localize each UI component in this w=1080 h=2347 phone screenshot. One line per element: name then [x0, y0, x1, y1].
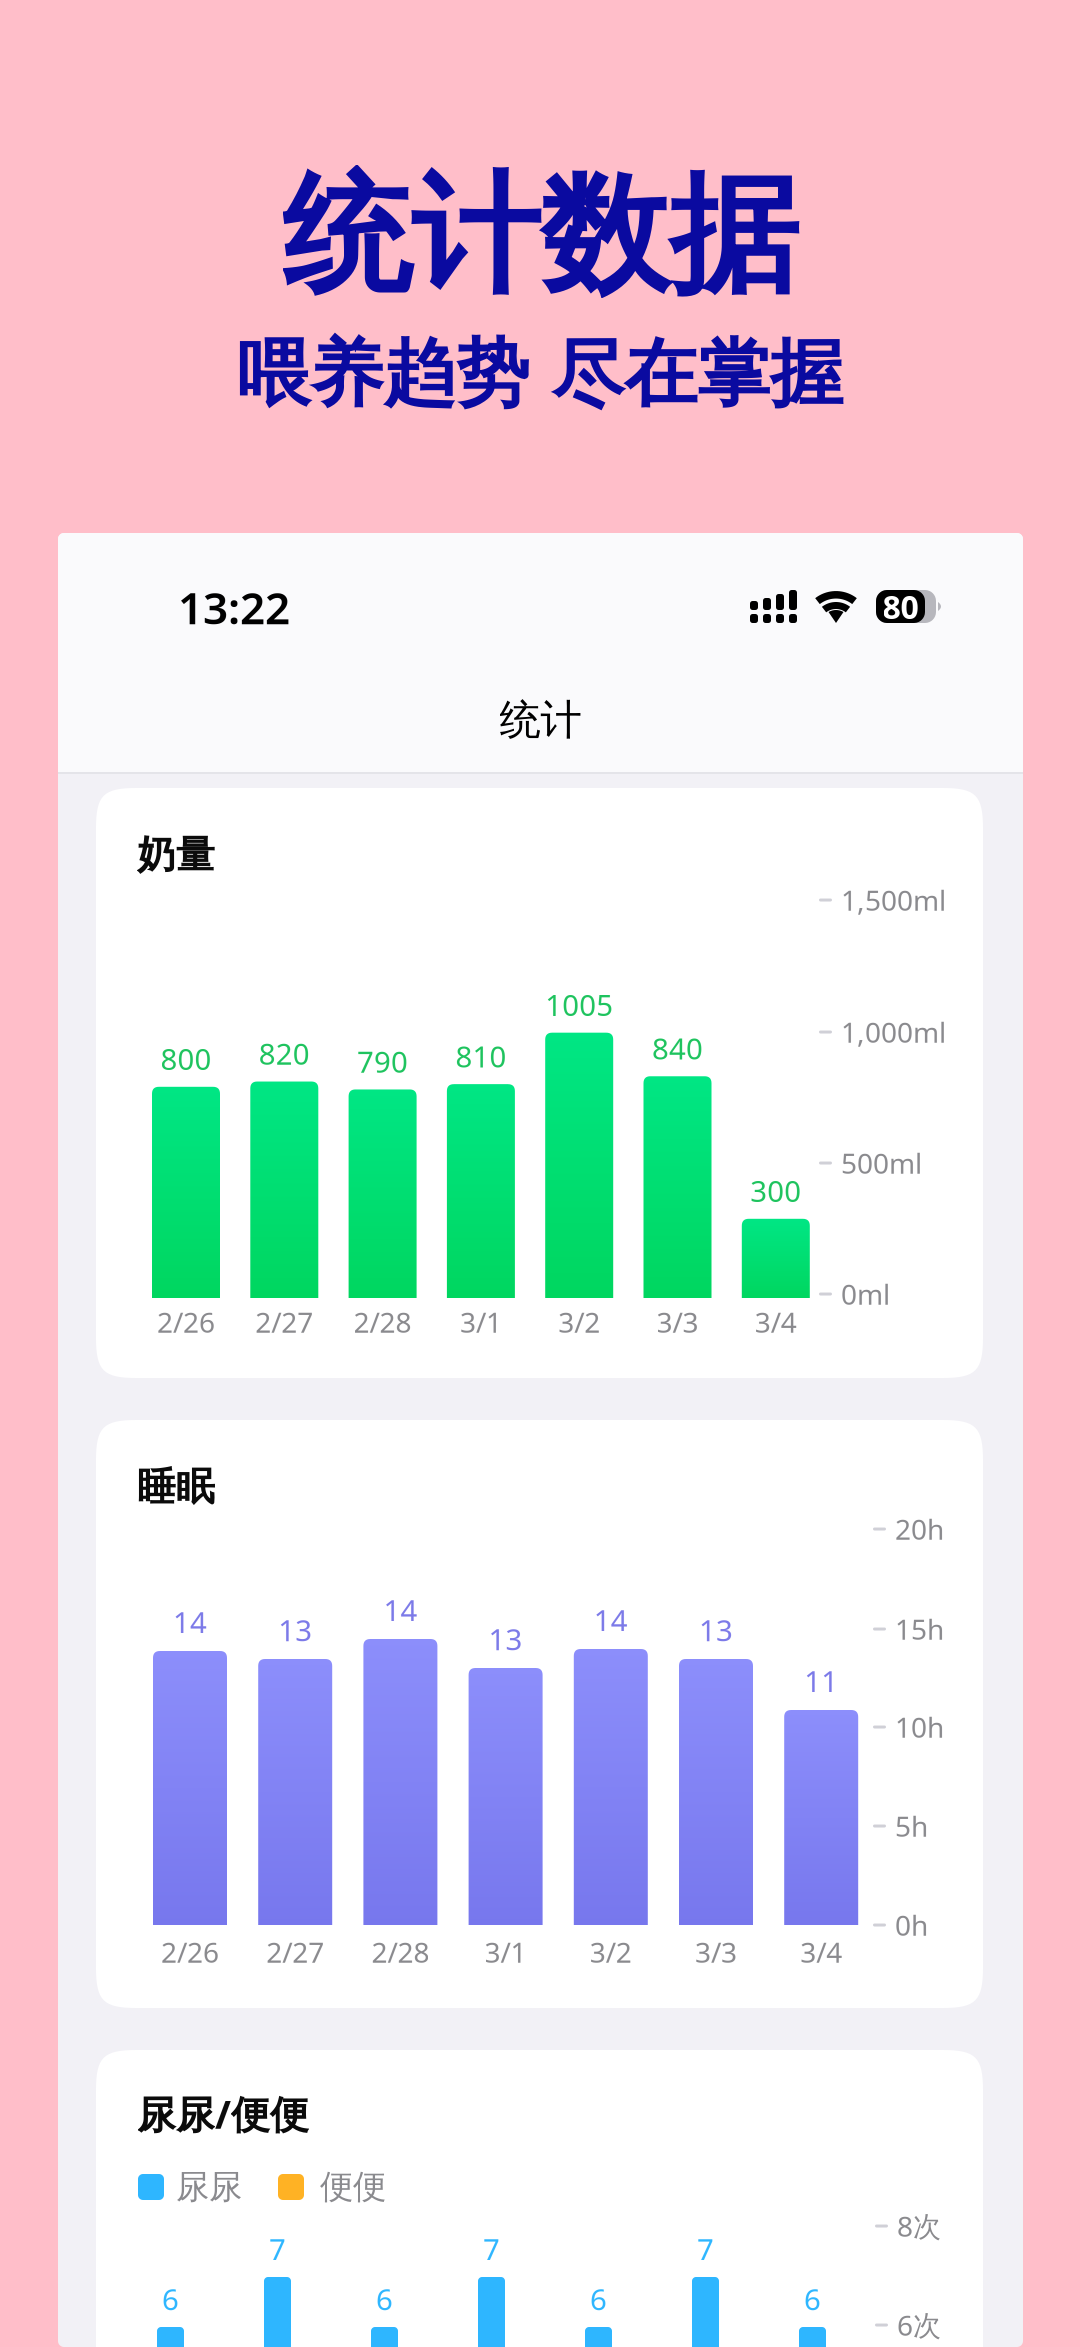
- staticText: 6: [804, 2279, 821, 2318]
- staticText: 14: [383, 1590, 417, 1629]
- staticText: 820: [259, 1034, 310, 1073]
- staticText: 14: [173, 1602, 207, 1641]
- staticText: 3/3: [656, 1303, 698, 1340]
- staticText: 2/26: [157, 1303, 215, 1340]
- staticText: 3/1: [460, 1303, 502, 1340]
- staticText: 2/28: [371, 1933, 429, 1970]
- staticText: 14: [594, 1600, 628, 1639]
- staticText: 2/27: [266, 1933, 324, 1970]
- staticText: 7: [269, 2229, 286, 2268]
- staticText: 0h: [895, 1906, 928, 1943]
- staticText: 7: [483, 2229, 500, 2268]
- staticText: 6: [162, 2279, 179, 2318]
- staticText: 尿尿/便便: [137, 2088, 309, 2139]
- staticText: 13: [278, 1610, 312, 1649]
- staticText: 6: [376, 2279, 393, 2318]
- staticText: 1005: [545, 985, 613, 1024]
- staticText: 统计数据: [282, 157, 798, 315]
- staticText: 2/27: [255, 1303, 313, 1340]
- staticText: 奶量: [137, 831, 215, 879]
- staticText: 统计: [499, 695, 581, 745]
- staticText: 15h: [895, 1610, 944, 1647]
- staticText: 1,500ml: [841, 881, 946, 918]
- staticText: 20h: [895, 1510, 944, 1547]
- staticText: 13:22: [178, 578, 290, 636]
- staticText: 2/26: [161, 1933, 219, 1970]
- staticText: 13: [699, 1610, 733, 1649]
- staticText: 0ml: [841, 1275, 890, 1312]
- staticText: 3/4: [755, 1303, 797, 1340]
- staticText: 790: [357, 1042, 408, 1081]
- staticText: 500ml: [841, 1144, 922, 1181]
- staticText: 睡眠: [137, 1463, 215, 1511]
- staticText: 840: [652, 1029, 703, 1068]
- staticText: 1,000ml: [841, 1013, 946, 1050]
- staticText: 3/1: [485, 1933, 527, 1970]
- staticText: 2/28: [354, 1303, 412, 1340]
- staticText: 6次: [897, 2306, 941, 2343]
- staticText: 3/4: [800, 1933, 842, 1970]
- staticText: 5h: [895, 1807, 928, 1844]
- staticText: 8次: [897, 2207, 941, 2244]
- staticText: 便便: [320, 2166, 386, 2207]
- staticText: 11: [804, 1661, 838, 1700]
- staticText: 80: [882, 585, 918, 628]
- staticText: 尿尿: [176, 2166, 242, 2207]
- staticText: 300: [750, 1171, 801, 1210]
- staticText: 3/3: [695, 1933, 737, 1970]
- staticText: 6: [590, 2279, 607, 2318]
- staticText: 13: [489, 1619, 523, 1658]
- staticText: 7: [697, 2229, 714, 2268]
- staticText: 810: [455, 1037, 506, 1076]
- staticText: 800: [160, 1039, 211, 1078]
- staticText: 10h: [895, 1708, 944, 1745]
- staticText: 喂养趋势 尽在掌握: [237, 329, 843, 419]
- staticText: 3/2: [558, 1303, 600, 1340]
- staticText: 3/2: [590, 1933, 632, 1970]
